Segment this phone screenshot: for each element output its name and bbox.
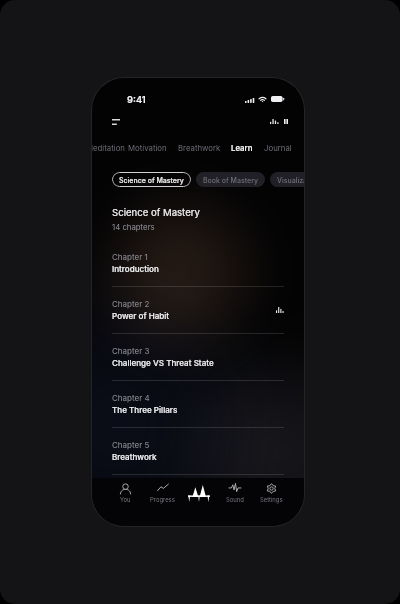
staticText: 14 chapters xyxy=(112,222,155,231)
button[interactable]: Chapter 4 xyxy=(112,381,284,427)
staticText: Settings xyxy=(260,496,283,503)
staticText: You xyxy=(120,496,131,503)
button[interactable]: Progress xyxy=(144,478,181,526)
button[interactable]: Menu xyxy=(104,110,128,134)
staticText: Chapter 1 xyxy=(112,252,148,262)
button[interactable]: Home xyxy=(181,478,217,526)
staticText: Chapter 5 xyxy=(112,440,150,450)
staticText: Science of Mastery xyxy=(112,207,200,219)
button[interactable]: Motivation xyxy=(123,140,172,155)
staticText: Progress xyxy=(150,496,175,503)
button[interactable]: Chapter 2 xyxy=(112,287,284,333)
staticText: Visualization xyxy=(277,176,304,184)
button[interactable]: Settings xyxy=(253,478,289,526)
staticText: Chapter 3 xyxy=(112,346,150,356)
staticText: Book of Mastery xyxy=(203,176,258,184)
staticText: 9:41 xyxy=(127,94,146,105)
button[interactable]: Learn xyxy=(226,140,258,155)
button[interactable]: Chapter 3 xyxy=(112,334,284,380)
staticText: Breathwork xyxy=(112,452,157,462)
staticText: The Three Pillars xyxy=(112,405,178,415)
staticText: Chapter 4 xyxy=(112,393,150,403)
staticText: Journal xyxy=(264,143,292,152)
button[interactable]: Breathwork xyxy=(173,140,226,155)
staticText: Power of Habit xyxy=(112,311,170,321)
staticText: Motivation xyxy=(128,143,167,152)
button[interactable]: Visualization xyxy=(270,172,304,187)
staticText: Meditation xyxy=(92,143,125,152)
button[interactable]: Science of Mastery xyxy=(112,172,191,187)
staticText: Challenge VS Threat State xyxy=(112,358,214,368)
button[interactable]: Meditation xyxy=(92,140,130,155)
staticText: Introduction xyxy=(112,264,159,274)
staticText: Breathwork xyxy=(178,143,221,152)
button[interactable]: Chapter 5 xyxy=(112,428,284,474)
button[interactable]: Journal xyxy=(259,140,297,155)
staticText: Sound xyxy=(226,496,244,503)
staticText: Learn xyxy=(231,143,253,152)
button[interactable]: Chapter 1 xyxy=(112,240,284,286)
staticText: Chapter 2 xyxy=(112,299,150,309)
button[interactable]: You xyxy=(107,478,144,526)
button[interactable]: Sound xyxy=(217,478,253,526)
button[interactable]: Book of Mastery xyxy=(196,172,265,187)
staticText: Science of Mastery xyxy=(119,176,184,184)
button[interactable]: Equalizer xyxy=(261,111,287,131)
button[interactable]: Pause xyxy=(277,111,294,131)
